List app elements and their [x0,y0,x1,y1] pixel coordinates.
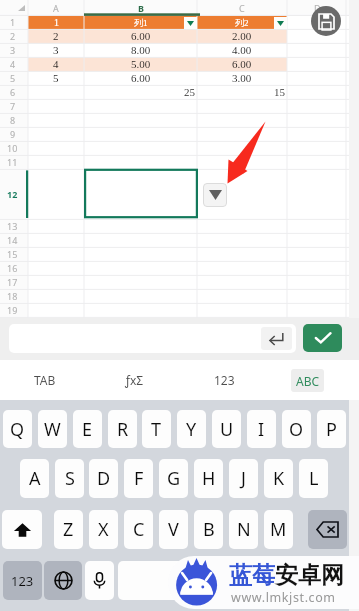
button[interactable]: M [264,510,293,549]
staticText: A [53,2,59,14]
staticText: E [82,417,93,442]
staticText: 4.00 [232,44,252,56]
staticText: www.lmkjst.com [231,589,336,606]
button[interactable]: N [229,510,258,549]
button[interactable]: L [299,459,328,498]
button[interactable]: Language [44,561,82,600]
button[interactable]: P [317,410,346,448]
staticText: 1 [54,17,59,28]
button[interactable]: 123 [3,561,42,600]
button[interactable]: E [73,410,102,448]
button[interactable]: Z [54,510,83,549]
button[interactable]: Filter [274,17,287,29]
button[interactable]: X [89,510,118,549]
staticText: R [117,417,129,442]
button[interactable]: F [124,459,153,498]
button[interactable]: H [194,459,223,498]
button[interactable]: K [264,459,293,498]
staticText: H [202,466,216,491]
staticText: 8.00 [131,44,151,56]
staticText: 列2 [235,17,249,28]
button[interactable]: S [55,459,84,498]
staticText: 17 [7,276,18,288]
staticText: 19 [7,304,18,316]
staticText: 18 [7,290,18,302]
staticText: ƒxΣ [125,372,144,388]
staticText: 6.00 [131,30,151,42]
staticText: TAB [34,372,56,388]
staticText: J [241,466,246,491]
button[interactable]: D [89,459,118,498]
button[interactable]: I [247,410,276,448]
staticText: 4 [10,58,16,70]
staticText: 13 [7,220,18,232]
button[interactable]: ABC [291,369,324,392]
staticText: W [44,417,61,442]
button[interactable]: Shift [2,510,42,549]
button[interactable]: T [142,410,171,448]
staticText: 6 [10,86,16,98]
button[interactable]: R [108,410,137,448]
staticText: T [151,417,162,442]
button[interactable]: Save [311,6,341,36]
staticText: 15 [274,86,285,98]
button[interactable]: Q [3,410,32,448]
button[interactable]: Y [177,410,206,448]
staticText: 6.00 [232,58,252,70]
staticText: A [29,466,41,491]
staticText: L [309,466,319,491]
staticText: B [203,517,215,542]
staticText: 1 [10,16,16,28]
button[interactable]: Enter [9,324,296,353]
staticText: S [65,466,75,491]
staticText: 3.00 [232,72,252,84]
button[interactable]: Voice input [85,561,114,600]
button[interactable]: O [282,410,311,448]
button[interactable]: B [194,510,223,549]
staticText: B [138,2,144,14]
button[interactable]: 123 [179,360,269,400]
staticText: C [239,2,245,14]
staticText: C [133,517,145,542]
button[interactable]: W [38,410,67,448]
button[interactable]: ƒxΣ [89,360,179,400]
staticText: Y [186,417,197,442]
staticText: 3 [10,44,16,56]
staticText: 3 [53,44,59,56]
staticText: 5 [53,72,59,84]
button[interactable]: TAB [0,360,89,400]
button[interactable]: Expand row [203,183,227,207]
staticText: 2.00 [232,30,252,42]
staticText: 7 [10,100,16,112]
staticText: 6.00 [131,72,151,84]
staticText: 4 [53,58,59,70]
staticText: 列1 [134,17,148,28]
button[interactable]: C [124,510,153,549]
staticText: V [168,517,179,542]
staticText: 11 [7,156,18,168]
staticText: I [258,417,265,442]
staticText: K [273,466,285,491]
staticText: 10 [7,142,18,154]
button[interactable]: Confirm [303,324,342,352]
staticText: 123 [214,372,235,388]
staticText: Q [10,417,25,442]
staticText: 16 [7,262,18,274]
button[interactable]: A [20,459,49,498]
staticText: D [97,466,111,491]
staticText: 20 [7,318,18,330]
button[interactable]: Enter [261,327,292,350]
staticText: 25 [184,86,195,98]
button[interactable]: J [229,459,258,498]
button[interactable]: V [159,510,188,549]
button[interactable]: U [212,410,241,448]
button[interactable]: Space [118,561,346,600]
staticText: F [134,466,144,491]
staticText: 蓝莓 [229,561,275,590]
button[interactable]: G [159,459,188,498]
button[interactable]: Backspace [308,510,347,549]
staticText: 5.00 [131,58,151,70]
staticText: 2 [10,30,16,42]
button[interactable]: Filter [184,17,197,29]
staticText: 2 [53,30,59,42]
